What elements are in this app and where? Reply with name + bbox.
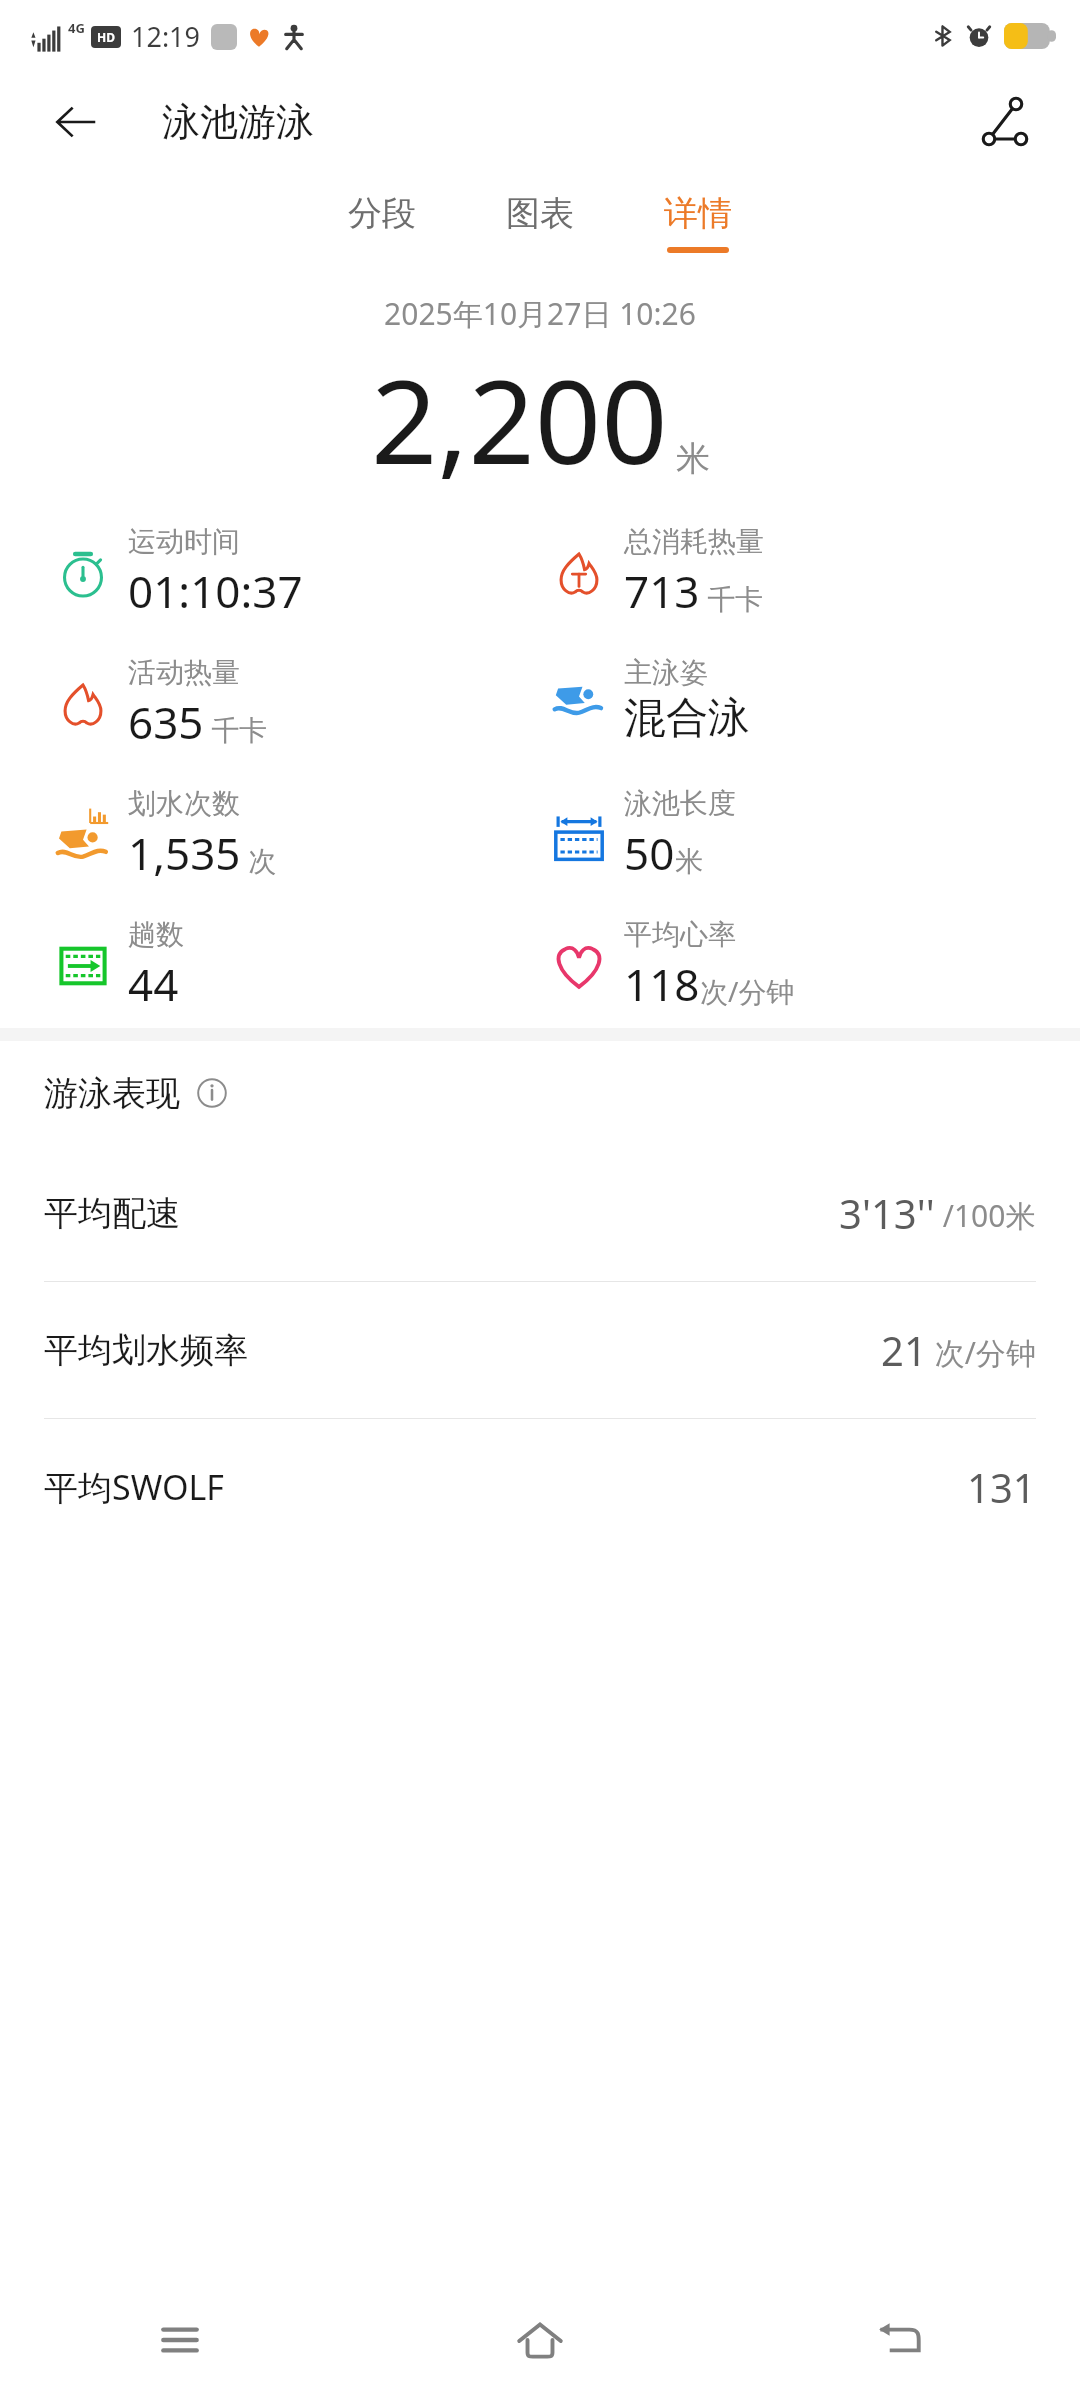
staticText: 44 xyxy=(128,954,179,1014)
staticText: 12:19 xyxy=(131,18,201,55)
staticText: 泳池长度 xyxy=(624,786,736,821)
staticText: 平均SWOLF xyxy=(44,1464,224,1510)
staticText: 游泳表现 xyxy=(44,1072,180,1115)
staticText: 2025年10月27日 10:26 xyxy=(0,293,1080,334)
staticText: 平均配速 xyxy=(44,1192,180,1235)
button[interactable]: 详情 xyxy=(654,182,742,263)
button[interactable]: 泳池长度 xyxy=(540,786,1080,883)
button[interactable]: Recent apps xyxy=(0,2280,360,2400)
staticText: 50 xyxy=(624,823,675,883)
button[interactable]: 总消耗热量 xyxy=(540,524,1080,621)
staticText: 分段 xyxy=(348,192,416,235)
staticText: 3'13'' xyxy=(839,1186,935,1240)
staticText: 主泳姿 xyxy=(624,655,708,690)
staticText: 平均划水频率 xyxy=(44,1329,248,1372)
button[interactable]: 平均配速 xyxy=(0,1145,1080,1282)
staticText: 4G xyxy=(68,19,85,37)
button[interactable]: 趟数 xyxy=(44,917,540,1014)
button[interactable]: Home xyxy=(360,2280,720,2400)
staticText: 活动热量 xyxy=(128,655,240,690)
staticText: 混合泳 xyxy=(624,692,750,745)
staticText: 划水次数 xyxy=(128,786,240,821)
button[interactable]: 划水次数 xyxy=(44,786,540,883)
staticText: 21 xyxy=(881,1323,927,1377)
staticText: 泳池游泳 xyxy=(162,98,314,146)
button[interactable]: 运动时间 xyxy=(44,524,540,621)
button[interactable]: Back xyxy=(44,91,106,153)
button[interactable]: 平均SWOLF xyxy=(0,1419,1080,1555)
staticText: 1,535 xyxy=(128,823,241,883)
button[interactable]: 主泳姿 xyxy=(540,655,1080,745)
staticText: /100米 xyxy=(935,1195,1036,1236)
button[interactable]: 平均划水频率 xyxy=(0,1282,1080,1419)
staticText: 713 xyxy=(624,561,700,621)
staticText: 图表 xyxy=(506,192,574,235)
staticText: 次/分钟 xyxy=(700,972,795,1010)
staticText: 趟数 xyxy=(128,917,184,952)
button[interactable]: Share xyxy=(970,87,1040,157)
button[interactable]: Back xyxy=(720,2280,1080,2400)
staticText: 次/分钟 xyxy=(927,1332,1036,1373)
button[interactable]: Info xyxy=(192,1073,232,1113)
staticText: 635 xyxy=(128,692,204,752)
button[interactable]: 分段 xyxy=(338,182,426,263)
staticText: 118 xyxy=(624,954,700,1014)
staticText: 千卡 xyxy=(204,710,268,748)
staticText: 米 xyxy=(676,437,710,480)
staticText: 131 xyxy=(967,1460,1036,1514)
staticText: 01:10:37 xyxy=(128,561,303,621)
staticText: HD xyxy=(97,29,115,45)
staticText: 次 xyxy=(241,841,277,879)
staticText: 总消耗热量 xyxy=(624,524,764,559)
button[interactable]: 活动热量 xyxy=(44,655,540,752)
button[interactable]: 平均心率 xyxy=(540,917,1080,1014)
staticText: 详情 xyxy=(664,192,732,235)
staticText: 平均心率 xyxy=(624,917,736,952)
button[interactable]: 图表 xyxy=(496,182,584,263)
staticText: 米 xyxy=(675,844,703,879)
staticText: 千卡 xyxy=(700,579,764,617)
staticText: 运动时间 xyxy=(128,524,240,559)
staticText: 2,200 xyxy=(371,340,668,498)
